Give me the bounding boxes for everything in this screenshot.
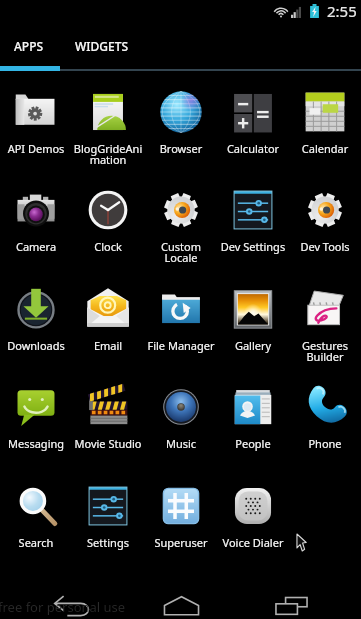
button[interactable]: Clock <box>72 182 144 254</box>
button[interactable]: Voice Dialer <box>217 478 289 550</box>
staticText: Clock <box>72 239 144 254</box>
staticText: Gestures Builder <box>289 338 361 364</box>
button[interactable]: Phone <box>289 379 361 451</box>
button[interactable]: Messaging <box>0 379 72 451</box>
staticText: Dev Tools <box>289 239 361 254</box>
staticText: Custom Locale <box>145 239 217 265</box>
staticText: Settings <box>72 535 144 550</box>
staticText: API Demos <box>0 141 72 156</box>
staticText: Movie Studio <box>72 436 144 451</box>
button[interactable]: Recents <box>261 592 321 619</box>
button[interactable]: Dev Settings <box>217 182 289 254</box>
staticText: WIDGETS <box>75 38 129 54</box>
button[interactable]: APPS <box>0 26 58 66</box>
button[interactable]: Music <box>145 379 217 451</box>
button[interactable]: API Demos <box>0 84 72 156</box>
button[interactable]: Home <box>151 592 211 619</box>
button[interactable]: BlogGrideAnimation <box>72 84 144 167</box>
staticText: Camera <box>0 239 72 254</box>
button[interactable]: Camera <box>0 182 72 254</box>
staticText: Gallery <box>217 338 289 353</box>
button[interactable]: Superuser <box>145 478 217 550</box>
button[interactable]: People <box>217 379 289 451</box>
staticText: Phone <box>289 436 361 451</box>
staticText: Calendar <box>289 141 361 156</box>
staticText: Dev Settings <box>217 239 289 254</box>
staticText: People <box>217 436 289 451</box>
staticText: Superuser <box>145 535 217 550</box>
button[interactable]: WIDGETS <box>58 26 146 66</box>
button[interactable]: Gallery <box>217 281 289 353</box>
staticText: Music <box>145 436 217 451</box>
staticText: Downloads <box>0 338 72 353</box>
button[interactable]: Back <box>42 592 102 619</box>
staticText: Voice Dialer <box>217 535 289 550</box>
button[interactable]: Gestures Builder <box>289 281 361 364</box>
button[interactable]: Downloads <box>0 281 72 353</box>
button[interactable]: File Manager <box>145 281 217 353</box>
button[interactable]: Movie Studio <box>72 379 144 451</box>
staticText: File Manager <box>145 338 217 353</box>
button[interactable]: Email <box>72 281 144 353</box>
button[interactable]: Settings <box>72 478 144 550</box>
button[interactable]: Calculator <box>217 84 289 156</box>
staticText: Messaging <box>0 436 72 451</box>
staticText: APPS <box>14 38 44 54</box>
staticText: Calculator <box>217 141 289 156</box>
button[interactable]: Dev Tools <box>289 182 361 254</box>
button[interactable]: Browser <box>145 84 217 156</box>
staticText: Browser <box>145 141 217 156</box>
button[interactable]: Custom Locale <box>145 182 217 265</box>
staticText: Search <box>0 535 72 550</box>
staticText: 2:55 <box>327 1 357 21</box>
button[interactable]: Search <box>0 478 72 550</box>
button[interactable]: Calendar <box>289 84 361 156</box>
staticText: free for personal use <box>0 598 126 616</box>
staticText: BlogGrideAnimation <box>72 141 144 167</box>
staticText: Email <box>72 338 144 353</box>
